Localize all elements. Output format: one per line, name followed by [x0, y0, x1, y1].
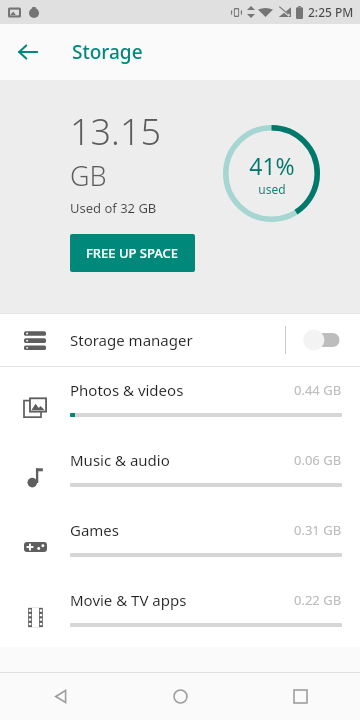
- staticText: Photos & videos: [70, 380, 294, 400]
- staticText: Storage manager: [70, 330, 285, 350]
- staticText: Used of 32 GB: [70, 199, 157, 217]
- button[interactable]: Storage manager: [0, 314, 360, 366]
- staticText: 0.22 GB: [294, 591, 342, 609]
- staticText: used: [258, 181, 286, 197]
- staticText: 0.44 GB: [294, 381, 342, 399]
- staticText: 13.15: [70, 107, 162, 156]
- staticText: 0.06 GB: [294, 451, 342, 469]
- staticText: FREE UP SPACE: [86, 244, 179, 262]
- button[interactable]: FREE UP SPACE: [70, 234, 195, 272]
- button[interactable]: Storage manager toggle: [286, 314, 360, 366]
- staticText: Games: [70, 520, 294, 540]
- button[interactable]: Games: [0, 507, 360, 577]
- staticText: 2:25 PM: [308, 4, 354, 20]
- button[interactable]: Back: [8, 32, 48, 72]
- button[interactable]: Movie & TV apps: [0, 577, 360, 647]
- staticText: 41%: [249, 150, 295, 181]
- button[interactable]: Home: [156, 673, 204, 720]
- button[interactable]: Recents: [276, 673, 324, 720]
- staticText: Movie & TV apps: [70, 590, 294, 610]
- button[interactable]: Back: [36, 673, 84, 720]
- button[interactable]: Music & audio: [0, 437, 360, 507]
- button[interactable]: Photos & videos: [0, 367, 360, 437]
- staticText: Music & audio: [70, 450, 294, 470]
- staticText: 0.31 GB: [294, 521, 342, 539]
- staticText: Storage: [72, 39, 143, 65]
- staticText: GB: [70, 157, 107, 194]
